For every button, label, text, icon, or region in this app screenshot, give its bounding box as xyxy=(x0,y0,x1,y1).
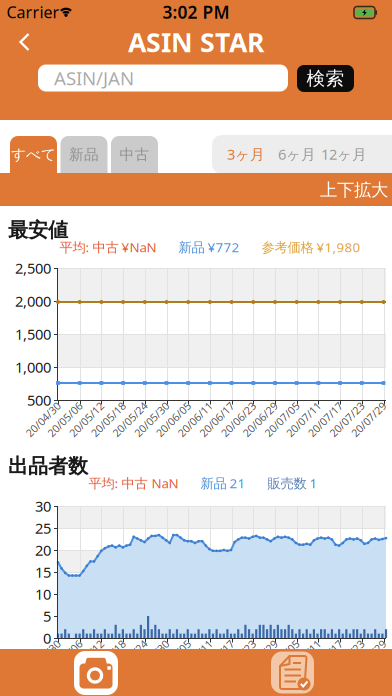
button[interactable]: ASIN/JAN xyxy=(38,64,288,91)
staticText: 上下拡大 xyxy=(320,179,388,201)
staticText: 20/04/30 xyxy=(21,412,65,426)
staticText: 参考価格 ¥1,980 xyxy=(261,238,360,256)
staticText: 中古 xyxy=(119,145,149,163)
staticText: 20/06/17 xyxy=(195,412,239,426)
staticText: ASIN STAR xyxy=(128,24,264,60)
staticText: 20/05/18 xyxy=(86,650,130,664)
staticText: 出品者数 xyxy=(8,454,88,478)
button[interactable]: Scan barcode xyxy=(74,651,118,695)
staticText: 20/06/29 xyxy=(238,412,282,426)
staticText: 20/07/29 xyxy=(347,412,391,426)
staticText: 20/06/29 xyxy=(238,650,282,664)
staticText: 販売数 1 xyxy=(267,474,317,492)
staticText: 20/05/06 xyxy=(43,650,87,664)
button[interactable]: 新品 xyxy=(60,136,107,181)
staticText: 3ヶ月 xyxy=(227,144,265,164)
staticText: 500 xyxy=(27,390,51,410)
staticText: 1,000 xyxy=(15,357,51,377)
staticText: 新品 xyxy=(69,145,99,163)
staticText: 20/07/17 xyxy=(303,650,347,664)
button[interactable]: 中古 xyxy=(111,136,158,181)
button[interactable]: すべて xyxy=(10,136,57,181)
staticText: 20/05/18 xyxy=(86,412,130,426)
staticText: 20/06/11 xyxy=(173,412,217,426)
staticText: 6ヶ月 xyxy=(278,144,316,164)
staticText: 12ヶ月 xyxy=(321,144,367,164)
staticText: 15 xyxy=(35,562,51,582)
staticText: 3:02 PM xyxy=(162,0,229,23)
staticText: 10 xyxy=(35,584,51,604)
staticText: 20 xyxy=(35,540,51,560)
staticText: 20/05/24 xyxy=(108,412,152,426)
staticText: 20/05/12 xyxy=(65,650,109,664)
staticText: 平均: 中古 NaN xyxy=(88,474,178,492)
staticText: 20/07/23 xyxy=(325,412,369,426)
staticText: 30 xyxy=(35,496,51,516)
button[interactable]: 6ヶ月 xyxy=(273,137,321,171)
staticText: 最安値 xyxy=(8,218,68,242)
staticText: 2,000 xyxy=(15,291,51,311)
staticText: 5 xyxy=(43,606,51,626)
staticText: 20/06/05 xyxy=(151,412,195,426)
staticText: 新品 ¥772 xyxy=(178,238,239,256)
button[interactable]: Back xyxy=(16,32,34,52)
staticText: 20/05/06 xyxy=(43,412,87,426)
staticText: すべて xyxy=(11,145,56,163)
staticText: 20/06/23 xyxy=(216,412,260,426)
staticText: 25 xyxy=(35,518,51,538)
staticText: ASIN/JAN xyxy=(54,66,134,90)
button[interactable]: 検索 xyxy=(297,65,354,92)
staticText: 20/07/05 xyxy=(260,650,304,664)
button[interactable]: Search history xyxy=(271,651,314,693)
button[interactable]: 12ヶ月 xyxy=(318,137,370,171)
staticText: 20/05/30 xyxy=(130,412,174,426)
staticText: 20/07/11 xyxy=(282,412,326,426)
button[interactable]: 上下拡大 xyxy=(320,179,388,201)
button[interactable]: 3ヶ月 xyxy=(222,137,270,171)
staticText: 平均: 中古 ¥NaN xyxy=(59,238,156,256)
staticText: 20/05/24 xyxy=(108,650,152,664)
staticText: 20/07/11 xyxy=(282,650,326,664)
staticText: 新品 21 xyxy=(200,474,245,492)
staticText: 1,500 xyxy=(15,324,51,344)
staticText: 20/07/17 xyxy=(303,412,347,426)
staticText: 20/07/05 xyxy=(260,412,304,426)
staticText: 検索 xyxy=(306,67,344,90)
staticText: 0 xyxy=(43,628,51,648)
staticText: 20/05/12 xyxy=(65,412,109,426)
staticText: Carrier xyxy=(6,1,59,23)
staticText: 2,500 xyxy=(15,258,51,278)
